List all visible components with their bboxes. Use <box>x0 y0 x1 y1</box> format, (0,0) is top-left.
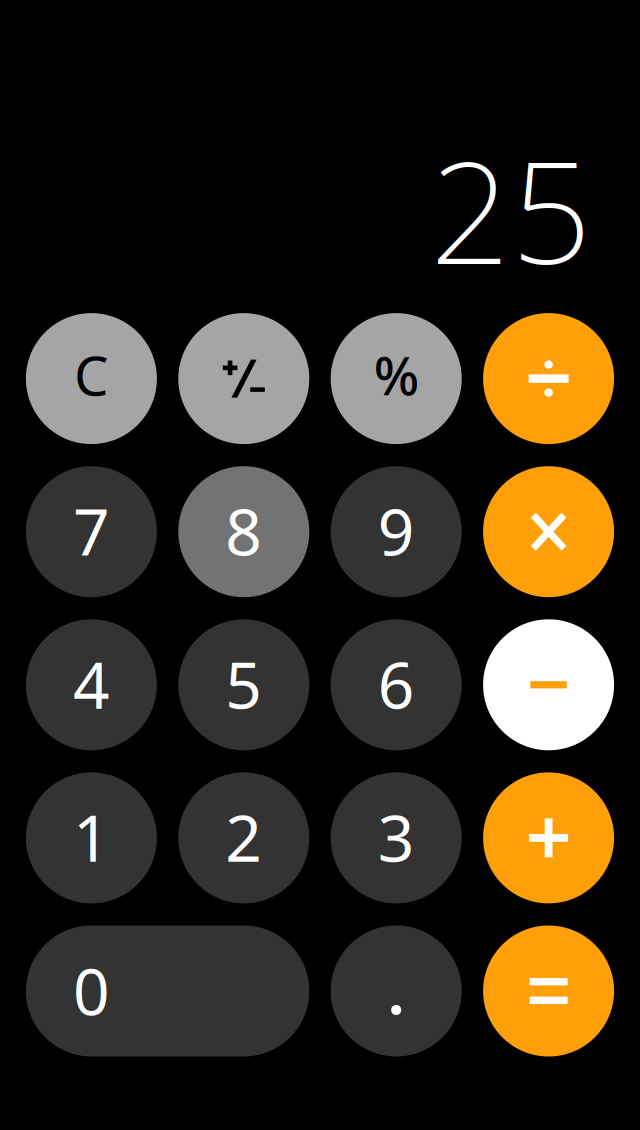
staticText: 7 <box>73 488 110 573</box>
button[interactable]: 9 <box>331 466 462 597</box>
button[interactable]: 7 <box>26 466 157 597</box>
button[interactable]: 6 <box>331 619 462 750</box>
staticText: 4 <box>73 641 110 726</box>
staticText: % <box>374 339 419 410</box>
button[interactable]: 4 <box>26 619 157 750</box>
button[interactable]: Minus <box>483 619 614 750</box>
button[interactable]: Divide <box>483 313 614 444</box>
staticText: 25 <box>430 115 592 303</box>
staticText: 0 <box>73 948 110 1033</box>
staticText: 5 <box>225 641 262 726</box>
staticText: 2 <box>225 794 262 879</box>
button[interactable]: Equals <box>483 925 614 1056</box>
button[interactable]: Plus minus <box>178 313 309 444</box>
button[interactable]: Plus <box>483 772 614 903</box>
staticText: 8 <box>225 488 262 573</box>
staticText: 3 <box>378 794 415 879</box>
button[interactable]: Clear <box>26 313 157 444</box>
button[interactable]: Multiply <box>483 466 614 597</box>
staticText: 9 <box>378 488 415 573</box>
button[interactable]: 1 <box>26 772 157 903</box>
button[interactable]: Zero <box>26 925 309 1056</box>
staticText: 1 <box>73 794 110 879</box>
button[interactable]: Percent <box>331 313 462 444</box>
button[interactable]: 5 <box>178 619 309 750</box>
button[interactable]: 8 <box>178 466 309 597</box>
button[interactable]: Decimal point <box>331 925 462 1056</box>
staticText: C <box>74 338 109 411</box>
button[interactable]: 3 <box>331 772 462 903</box>
staticText: 6 <box>378 641 415 726</box>
button[interactable]: 2 <box>178 772 309 903</box>
